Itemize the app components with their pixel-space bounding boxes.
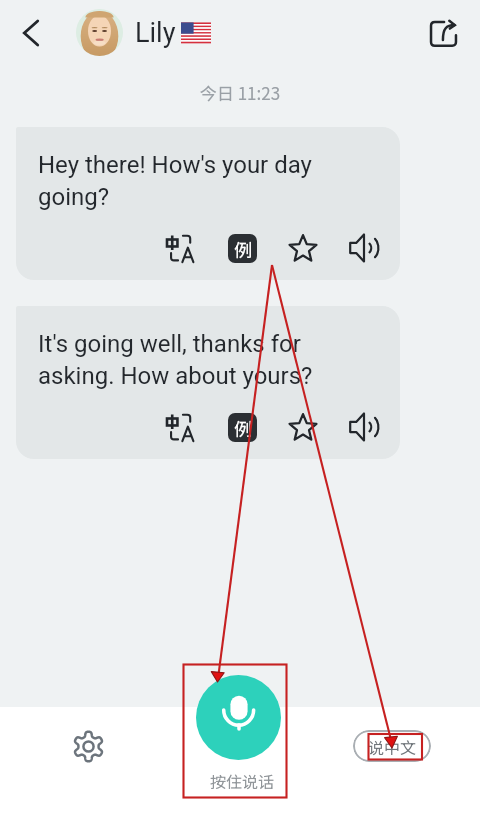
staticText: 例	[234, 415, 252, 441]
button[interactable]: Share	[415, 5, 471, 61]
button[interactable]: Hold to speak	[196, 675, 281, 760]
staticText: 今日 11:23	[0, 80, 480, 105]
button[interactable]: Play audio	[348, 232, 380, 264]
button[interactable]: Example sentence	[226, 411, 258, 443]
button[interactable]: Back	[0, 2, 62, 64]
staticText: 说中文	[368, 735, 417, 758]
button[interactable]: Favorite	[287, 232, 319, 264]
staticText: 例	[234, 236, 252, 262]
button[interactable]: It's going well, thanks for asking. How …	[16, 306, 400, 459]
button[interactable]: Favorite	[287, 411, 319, 443]
button[interactable]: Example sentence	[226, 232, 258, 264]
staticText: It's going well, thanks for asking. How …	[38, 330, 380, 389]
button[interactable]: Settings	[66, 724, 110, 768]
button[interactable]: Hey there! How's your day going?	[16, 127, 400, 280]
staticText: Lily	[135, 17, 176, 49]
button[interactable]: Translate	[165, 232, 197, 264]
button[interactable]: Translate	[165, 411, 197, 443]
staticText: Hey there! How's your day going?	[38, 151, 380, 210]
staticText: 按住说话	[210, 769, 275, 792]
button[interactable]: Play audio	[348, 411, 380, 443]
button[interactable]: 说中文	[353, 730, 431, 762]
